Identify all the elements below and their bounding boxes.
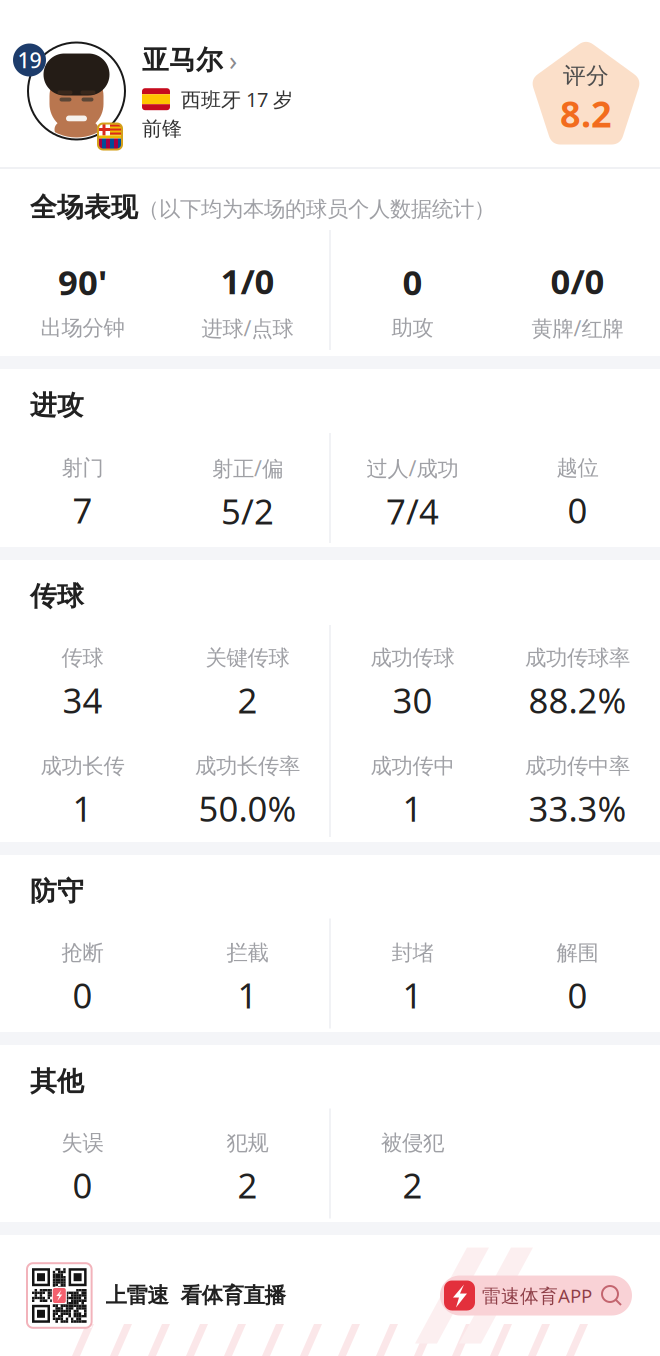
staticText: 防守: [30, 875, 84, 908]
staticText: 0: [567, 487, 587, 533]
staticText: 进攻: [30, 389, 84, 422]
staticText: 成功传中: [370, 753, 454, 779]
staticText: 50.0%: [198, 785, 296, 831]
staticText: 1: [237, 972, 257, 1018]
staticText: 前锋: [142, 116, 182, 141]
staticText: 成功长传率: [195, 753, 300, 779]
staticText: 7/4: [386, 488, 439, 534]
staticText: 1/0: [220, 258, 274, 304]
staticText: 出场分钟: [40, 315, 124, 341]
staticText: 成功传球: [370, 645, 454, 671]
staticText: 上雷速 看体育直播: [106, 1282, 286, 1309]
staticText: 2: [237, 677, 257, 723]
staticText: ›: [229, 42, 237, 78]
staticText: 亚马尔: [142, 44, 223, 77]
staticText: 5/2: [221, 488, 274, 534]
staticText: 90': [58, 259, 107, 305]
staticText: 传球: [30, 580, 84, 613]
staticText: 解围: [556, 940, 598, 966]
staticText: 1: [72, 785, 92, 831]
staticText: 88.2%: [528, 677, 626, 723]
staticText: 1: [402, 972, 422, 1018]
button[interactable]: 雷速体育APP: [440, 1275, 632, 1315]
staticText: 2: [237, 1162, 257, 1208]
staticText: 19: [17, 46, 41, 74]
staticText: 雷速体育APP: [482, 1283, 592, 1308]
staticText: 7: [72, 487, 92, 533]
staticText: 其他: [30, 1065, 84, 1098]
staticText: 进球/点球: [201, 314, 293, 342]
staticText: 0: [72, 972, 92, 1018]
staticText: 评分: [563, 62, 609, 89]
staticText: 30: [392, 677, 432, 723]
staticText: 射正/偏: [212, 454, 283, 482]
staticText: 传球: [61, 645, 103, 671]
staticText: 犯规: [226, 1130, 268, 1156]
staticText: 成功传中率: [525, 753, 630, 779]
staticText: 2: [402, 1162, 422, 1208]
staticText: 过人/成功: [366, 454, 458, 482]
staticText: 成功长传: [40, 753, 124, 779]
staticText: 关键传球: [205, 645, 289, 671]
button[interactable]: 亚马尔: [142, 42, 237, 78]
staticText: 成功传球率: [525, 645, 630, 671]
staticText: 0: [72, 1162, 92, 1208]
staticText: 抢断: [61, 940, 103, 966]
staticText: 西班牙 17 岁: [181, 86, 293, 112]
staticText: 封堵: [391, 940, 433, 966]
staticText: 射门: [61, 455, 103, 481]
staticText: 0: [567, 972, 587, 1018]
staticText: 助攻: [391, 315, 433, 341]
staticText: 33.3%: [528, 785, 626, 831]
staticText: 0: [402, 259, 422, 305]
staticText: （以下均为本场的球员个人数据统计）: [138, 196, 495, 222]
staticText: 34: [62, 677, 102, 723]
staticText: 黄牌/红牌: [531, 314, 623, 342]
staticText: 1: [402, 785, 422, 831]
staticText: 全场表现: [30, 191, 138, 224]
staticText: 失误: [61, 1130, 103, 1156]
staticText: 0/0: [550, 258, 604, 304]
staticText: 8.2: [560, 89, 612, 137]
staticText: 被侵犯: [381, 1130, 444, 1156]
staticText: 越位: [556, 455, 598, 481]
staticText: 拦截: [226, 940, 268, 966]
